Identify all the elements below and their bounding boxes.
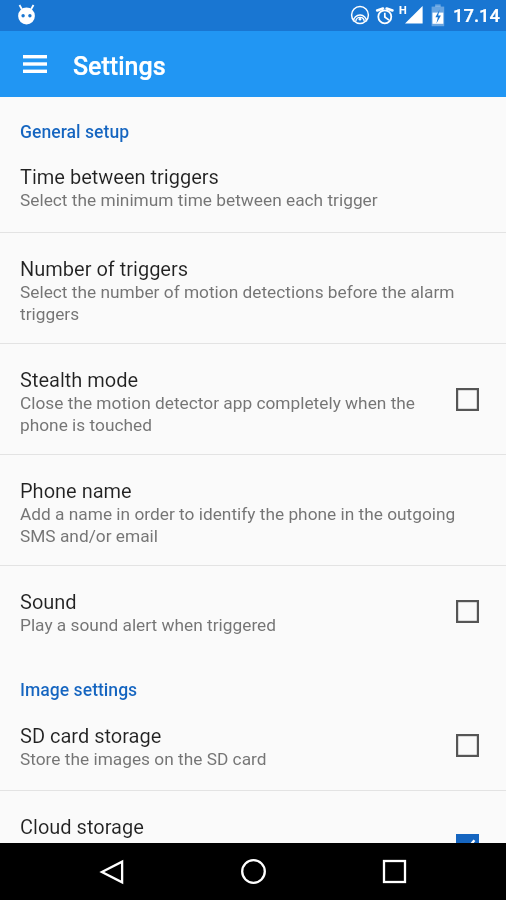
button[interactable]: Cloud storage: [0, 791, 506, 900]
button[interactable]: Back: [78, 843, 145, 900]
staticText: Store the images on the SD card: [20, 749, 449, 769]
staticText: 17.14: [453, 5, 500, 27]
button[interactable]: Sound: [449, 593, 486, 630]
staticText: Select the number of motion detections b…: [20, 282, 456, 324]
button[interactable]: Stealth mode: [0, 344, 506, 454]
button[interactable]: Cloud storage: [449, 827, 486, 864]
staticText: Stealth mode: [20, 368, 139, 391]
staticText: Close the motion detector app completely…: [20, 393, 449, 435]
staticText: Phone name: [20, 479, 132, 502]
staticText: Number of triggers: [20, 257, 189, 280]
button[interactable]: Home: [220, 843, 287, 900]
staticText: Play a sound alert when triggered: [20, 615, 449, 635]
staticText: Select the minimum time between each tri…: [20, 190, 456, 210]
button[interactable]: SD card storage: [0, 700, 506, 790]
staticText: Add a name in order to identify the phon…: [20, 504, 456, 546]
button[interactable]: SD card storage: [449, 727, 486, 764]
button[interactable]: Phone name: [0, 455, 506, 565]
staticText: Sound: [20, 590, 77, 613]
staticText: Settings: [73, 52, 166, 81]
button[interactable]: Number of triggers: [0, 233, 506, 343]
staticText: Store the images in the cloud: [20, 840, 449, 860]
staticText: SD card storage: [20, 724, 162, 747]
staticText: Image settings: [20, 680, 138, 701]
staticText: Cloud storage: [20, 815, 144, 838]
button[interactable]: Open navigation menu: [11, 40, 59, 88]
staticText: General setup: [20, 122, 130, 143]
button[interactable]: Time between triggers: [0, 141, 506, 232]
button[interactable]: Recent apps: [361, 843, 428, 900]
button[interactable]: Stealth mode: [449, 381, 486, 418]
button[interactable]: Sound: [0, 566, 506, 657]
staticText: H: [399, 4, 407, 17]
staticText: Time between triggers: [20, 165, 219, 188]
